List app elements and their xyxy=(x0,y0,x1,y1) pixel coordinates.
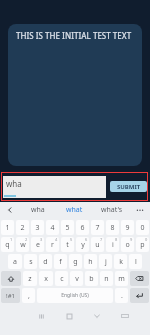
button[interactable]: 7 xyxy=(91,220,104,235)
staticText: wha xyxy=(6,178,22,189)
button[interactable]: f xyxy=(54,254,67,269)
staticText: 4 xyxy=(55,237,58,242)
staticText: t xyxy=(66,240,69,250)
staticText: g xyxy=(73,257,78,267)
button[interactable]: j xyxy=(99,254,112,269)
button[interactable]: 8 xyxy=(106,220,119,235)
button[interactable]: wha xyxy=(3,176,106,198)
staticText: e xyxy=(36,240,40,250)
staticText: h xyxy=(88,257,93,267)
button[interactable]: 5 xyxy=(61,220,74,235)
staticText: w xyxy=(20,240,26,250)
staticText: p xyxy=(140,240,145,250)
button[interactable]: d xyxy=(39,254,52,269)
button[interactable]: 6 xyxy=(76,220,89,235)
button[interactable]: what xyxy=(56,202,93,218)
button[interactable]: y xyxy=(76,237,89,252)
staticText: 7 xyxy=(100,237,103,242)
staticText: 8 xyxy=(110,223,115,233)
staticText: 8 xyxy=(115,237,118,242)
button[interactable]: k xyxy=(114,254,127,269)
button[interactable]: v xyxy=(70,271,83,286)
button[interactable]: Shift xyxy=(1,271,21,286)
button[interactable]: , xyxy=(22,288,35,303)
staticText: 9 xyxy=(125,223,130,233)
staticText: 3 xyxy=(35,223,40,233)
staticText: 0 xyxy=(140,223,145,233)
button[interactable]: c xyxy=(55,271,68,286)
staticText: 0 xyxy=(145,237,148,242)
staticText: English (US) xyxy=(61,292,89,299)
staticText: q xyxy=(5,240,10,250)
staticText: b xyxy=(89,274,94,284)
staticText: what xyxy=(66,205,83,215)
button[interactable]: s xyxy=(24,254,37,269)
button[interactable]: Previous suggestions xyxy=(0,202,20,218)
staticText: , xyxy=(28,291,30,301)
button[interactable]: Home xyxy=(55,306,83,326)
staticText: 6 xyxy=(80,223,85,233)
staticText: SUBMIT xyxy=(117,183,141,191)
button[interactable]: g xyxy=(69,254,82,269)
staticText: s xyxy=(29,257,33,267)
button[interactable]: x xyxy=(39,271,53,286)
staticText: 2 xyxy=(25,237,28,242)
button[interactable]: t xyxy=(61,237,74,252)
staticText: 1 xyxy=(10,237,13,242)
button[interactable]: h xyxy=(84,254,97,269)
button[interactable]: wha xyxy=(20,202,56,218)
button[interactable]: 4 xyxy=(46,220,59,235)
button[interactable]: w xyxy=(16,237,29,252)
staticText: n xyxy=(104,274,109,284)
button[interactable]: Close keyboard xyxy=(83,306,111,326)
button[interactable]: 2 xyxy=(16,220,29,235)
button[interactable]: 1 xyxy=(1,220,14,235)
button[interactable]: p xyxy=(136,237,149,252)
button[interactable]: l xyxy=(129,254,142,269)
staticText: 6 xyxy=(85,237,88,242)
button[interactable]: b xyxy=(85,271,98,286)
button[interactable]: o xyxy=(121,237,134,252)
staticText: 7 xyxy=(95,223,100,233)
button[interactable]: SUBMIT xyxy=(110,181,147,192)
staticText: u xyxy=(95,240,100,250)
button[interactable]: English (US) xyxy=(37,288,113,303)
button[interactable]: THIS IS THE INITIAL TEST TEXT xyxy=(8,24,142,166)
button[interactable]: Recent apps xyxy=(27,306,55,326)
staticText: y xyxy=(81,240,85,250)
button[interactable]: n xyxy=(100,271,113,286)
staticText: d xyxy=(43,257,48,267)
button[interactable]: what's xyxy=(93,202,130,218)
button[interactable]: 0 xyxy=(136,220,149,235)
button[interactable]: z xyxy=(23,271,37,286)
button[interactable]: a xyxy=(8,254,22,269)
staticText: c xyxy=(60,274,64,284)
staticText: v xyxy=(75,274,79,284)
button[interactable]: i xyxy=(106,237,119,252)
staticText: i xyxy=(112,240,114,250)
button[interactable]: !#1 xyxy=(1,288,20,303)
button[interactable]: Enter xyxy=(130,288,149,303)
button[interactable]: Switch keyboard xyxy=(111,306,139,326)
staticText: 5 xyxy=(65,223,70,233)
button[interactable]: q xyxy=(1,237,14,252)
staticText: z xyxy=(28,274,32,284)
staticText: . xyxy=(121,291,123,301)
staticText: a xyxy=(13,257,17,267)
button[interactable]: e xyxy=(31,237,44,252)
button[interactable]: Backspace xyxy=(130,271,149,286)
button[interactable]: 3 xyxy=(31,220,44,235)
button[interactable]: 9 xyxy=(121,220,134,235)
button[interactable]: u xyxy=(91,237,104,252)
staticText: what's xyxy=(101,205,123,215)
staticText: k xyxy=(119,257,123,267)
staticText: o xyxy=(125,240,130,250)
staticText: THIS IS THE INITIAL TEST TEXT xyxy=(16,30,132,41)
staticText: m xyxy=(118,274,125,284)
staticText: 1 xyxy=(5,223,10,233)
button[interactable]: . xyxy=(115,288,128,303)
button[interactable]: m xyxy=(115,271,128,286)
button[interactable]: More options xyxy=(130,202,150,218)
button[interactable]: r xyxy=(46,237,59,252)
staticText: r xyxy=(51,240,54,250)
